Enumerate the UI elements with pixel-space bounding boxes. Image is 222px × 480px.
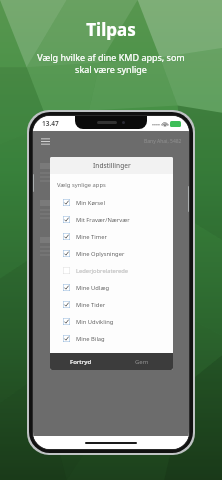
staticText: Gem: [135, 358, 149, 366]
staticText: Min Kørsel: [76, 199, 105, 207]
staticText: Mine Oplysninger: [76, 250, 125, 258]
staticText: Mine Bilag: [76, 335, 105, 343]
staticText: Lederjobrelaterede: [76, 267, 129, 275]
button[interactable]: Mit Fravær/Nærvær: [50, 211, 173, 228]
button[interactable]: Mine Oplysninger: [50, 245, 173, 262]
button[interactable]: Mine Bilag: [50, 330, 173, 347]
staticText: Vælg synlige apps: [57, 181, 106, 189]
staticText: Fortryd: [70, 358, 92, 366]
staticText: 13.47: [42, 119, 59, 128]
button[interactable]: Menu: [39, 135, 51, 147]
staticText: Tilpas: [86, 18, 136, 41]
button[interactable]: Min Kørsel: [50, 194, 173, 211]
staticText: Vælg hvilke af dine KMD apps, som skal v…: [37, 51, 185, 76]
button[interactable]: Gem: [111, 353, 173, 370]
staticText: Mine Tider: [76, 301, 106, 309]
staticText: Bany Ahai, 5482: [144, 138, 182, 145]
staticText: Indstillinger: [93, 161, 131, 170]
button[interactable]: Mine Tider: [50, 296, 173, 313]
staticText: Mine Udlæg: [76, 284, 109, 292]
staticText: Mine Timer: [76, 233, 107, 241]
button[interactable]: Mine Timer: [50, 228, 173, 245]
button[interactable]: Mine Udlæg: [50, 279, 173, 296]
button[interactable]: Min Udvikling: [50, 313, 173, 330]
button[interactable]: Fortryd: [50, 353, 111, 370]
staticText: Mit Fravær/Nærvær: [76, 216, 130, 224]
button[interactable]: Lederjobrelaterede: [50, 262, 173, 279]
staticText: Min Udvikling: [76, 318, 114, 326]
